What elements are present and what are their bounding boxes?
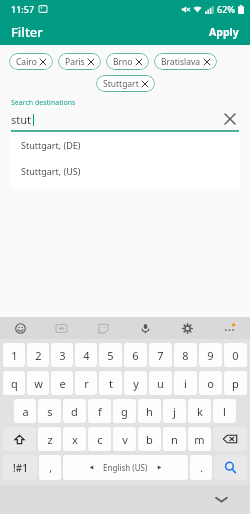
staticText: v — [122, 432, 128, 447]
button[interactable]: g — [113, 399, 136, 423]
staticText: , — [49, 461, 52, 475]
staticText: i — [184, 376, 187, 391]
staticText: stut — [11, 112, 32, 127]
staticText: . — [200, 461, 203, 475]
button[interactable]: Stuttgart — [96, 75, 155, 92]
staticText: 1 — [11, 348, 18, 363]
staticText: Paris — [65, 56, 85, 68]
button[interactable]: Voice input — [124, 317, 166, 339]
staticText: Apply — [209, 25, 239, 39]
button[interactable]: Brno — [106, 53, 149, 70]
button[interactable]: q — [3, 371, 25, 395]
button[interactable]: Hide keyboard — [211, 491, 232, 508]
staticText: x — [72, 432, 78, 447]
button[interactable]: h — [138, 399, 161, 423]
staticText: 8 — [182, 348, 189, 363]
button[interactable]: w — [27, 371, 49, 395]
staticText: l — [223, 404, 226, 419]
button[interactable]: i — [174, 371, 197, 395]
staticText: h — [146, 404, 153, 419]
staticText: Stuttgart — [103, 78, 139, 90]
button[interactable]: Shift — [3, 427, 36, 451]
staticText: Search destinations — [11, 98, 76, 108]
button[interactable]: Emoji — [0, 317, 41, 339]
staticText: 4 — [83, 348, 90, 363]
button[interactable]: x — [63, 427, 86, 451]
button[interactable]: 3 — [51, 343, 73, 367]
button[interactable]: 9 — [199, 343, 222, 367]
button[interactable]: m — [188, 427, 211, 451]
button[interactable]: d — [63, 399, 86, 423]
button[interactable]: r — [75, 371, 97, 395]
staticText: 7 — [157, 348, 164, 363]
staticText: English (US) — [103, 462, 148, 473]
button[interactable]: t — [99, 371, 122, 395]
button[interactable]: s — [38, 399, 61, 423]
button[interactable]: a — [14, 399, 36, 423]
button[interactable]: n — [163, 427, 186, 451]
button[interactable]: Apply — [198, 20, 250, 44]
staticText: d — [71, 404, 78, 419]
button[interactable]: j — [163, 399, 186, 423]
button[interactable]: GIF — [41, 317, 82, 339]
staticText: f — [98, 404, 102, 419]
staticText: !#1 — [13, 461, 28, 475]
button[interactable]: c — [88, 427, 111, 451]
staticText: m — [194, 432, 205, 447]
button[interactable]: More options — [208, 317, 250, 339]
staticText: z — [47, 432, 53, 447]
button[interactable]: 0 — [224, 343, 247, 367]
button[interactable]: !#1 — [3, 455, 37, 480]
button[interactable]: Clear search — [221, 110, 239, 128]
button[interactable]: Search — [214, 455, 247, 480]
staticText: 6 — [132, 348, 139, 363]
button[interactable]: . — [190, 455, 212, 480]
button[interactable]: Stuttgart, (US) — [10, 158, 240, 184]
button[interactable]: Stuttgart, (DE) — [10, 132, 240, 158]
button[interactable]: Space, English (US) — [63, 455, 188, 480]
button[interactable]: o — [199, 371, 222, 395]
button[interactable]: k — [188, 399, 211, 423]
staticText: t — [109, 376, 113, 391]
button[interactable]: Backspace — [213, 427, 247, 451]
button[interactable]: z — [38, 427, 61, 451]
staticText: g — [121, 404, 128, 419]
button[interactable]: v — [113, 427, 136, 451]
staticText: j — [173, 404, 176, 419]
staticText: Bratislava — [161, 56, 201, 68]
button[interactable]: e — [51, 371, 73, 395]
staticText: 9 — [207, 348, 214, 363]
staticText: u — [157, 376, 164, 391]
button[interactable]: , — [39, 455, 61, 480]
button[interactable]: 6 — [124, 343, 147, 367]
button[interactable]: f — [88, 399, 111, 423]
button[interactable]: 8 — [174, 343, 197, 367]
staticText: o — [207, 376, 214, 391]
button[interactable]: 7 — [149, 343, 172, 367]
button[interactable]: 4 — [75, 343, 97, 367]
button[interactable]: 1 — [3, 343, 25, 367]
staticText: c — [97, 432, 103, 447]
button[interactable]: Cairo — [9, 53, 53, 70]
button[interactable]: y — [124, 371, 147, 395]
staticText: k — [197, 404, 203, 419]
button[interactable]: Keyboard settings — [166, 317, 208, 339]
button[interactable]: p — [224, 371, 247, 395]
button[interactable]: 2 — [27, 343, 49, 367]
button[interactable]: u — [149, 371, 172, 395]
button[interactable]: Stickers — [82, 317, 124, 339]
staticText: n — [171, 432, 178, 447]
button[interactable]: 5 — [99, 343, 122, 367]
staticText: 5 — [107, 348, 114, 363]
button[interactable]: b — [138, 427, 161, 451]
button[interactable]: l — [213, 399, 236, 423]
staticText: r — [84, 376, 89, 391]
staticText: p — [232, 376, 239, 391]
button[interactable]: Paris — [58, 53, 101, 70]
staticText: 2 — [35, 348, 42, 363]
staticText: s — [47, 404, 53, 419]
staticText: a — [22, 404, 29, 419]
staticText: Cairo — [16, 56, 37, 68]
staticText: Brno — [113, 56, 133, 68]
button[interactable]: Bratislava — [154, 53, 217, 70]
